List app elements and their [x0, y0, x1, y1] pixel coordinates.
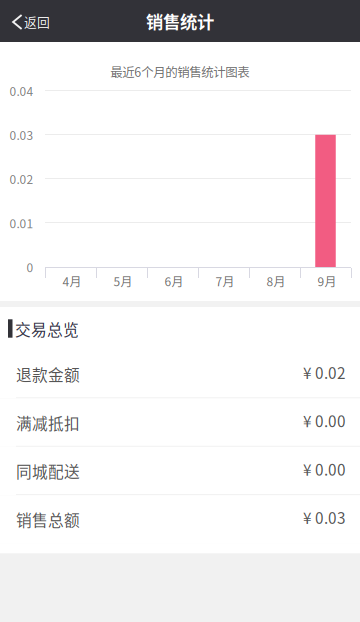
staticText: ¥ 0.00	[303, 409, 346, 432]
button[interactable]: 销售总额	[0, 495, 360, 544]
staticText: ¥ 0.02	[303, 361, 346, 383]
staticText: 0	[26, 258, 33, 276]
staticText: 交易总览	[15, 318, 79, 340]
staticText: 7月	[215, 272, 234, 290]
staticText: 4月	[62, 272, 81, 290]
button[interactable]: 退款金额	[0, 350, 360, 398]
staticText: 销售总额	[16, 508, 80, 531]
staticText: 8月	[266, 272, 285, 290]
staticText: 6月	[164, 272, 183, 290]
button[interactable]: 同城配送	[0, 447, 360, 495]
staticText: 0.02	[9, 170, 33, 188]
staticText: 销售统计	[146, 8, 214, 34]
staticText: 退款金额	[16, 363, 80, 386]
staticText: 9月	[317, 272, 336, 290]
staticText: 满减抵扣	[16, 411, 80, 434]
staticText: 返回	[24, 12, 50, 31]
staticText: 0.01	[9, 214, 33, 232]
button[interactable]: 返回	[0, 0, 62, 42]
staticText: 5月	[113, 272, 132, 290]
staticText: ¥ 0.00	[303, 458, 346, 480]
staticText: 0.04	[9, 82, 33, 99]
staticText: 同城配送	[16, 460, 80, 482]
staticText: 0.03	[9, 126, 33, 143]
staticText: 最近6个月的销售统计图表	[110, 62, 249, 80]
staticText: ¥ 0.03	[303, 506, 346, 528]
button[interactable]: 满减抵扣	[0, 398, 360, 447]
